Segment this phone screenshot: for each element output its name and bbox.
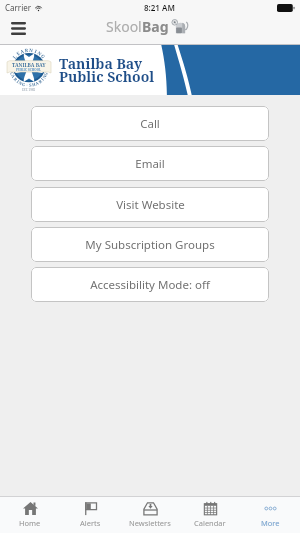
staticText: Newsletters	[129, 518, 171, 528]
button[interactable]: Alerts	[60, 496, 120, 533]
button[interactable]: Calendar	[180, 496, 240, 533]
staticText: Visit Website	[116, 197, 185, 213]
staticText: Carrier	[5, 2, 32, 13]
staticText: My Subscription Groups	[85, 237, 215, 253]
staticText: Skool	[106, 17, 142, 36]
staticText: 8:21 AM	[144, 2, 175, 13]
button[interactable]: Call	[31, 106, 269, 141]
staticText: Home	[19, 518, 41, 528]
staticText: Public School	[59, 67, 155, 86]
staticText: Email	[135, 156, 165, 172]
button[interactable]: My Subscription Groups	[31, 227, 269, 262]
staticText: More	[261, 518, 280, 528]
button[interactable]: Home	[0, 496, 60, 533]
staticText: Alerts	[80, 518, 101, 528]
button[interactable]: Accessibility Mode: off	[31, 267, 269, 302]
button[interactable]: More	[240, 496, 300, 533]
staticText: Calendar	[194, 518, 226, 528]
staticText: Call	[140, 116, 160, 132]
staticText: Accessibility Mode: off	[90, 277, 210, 293]
button[interactable]: Visit Website	[31, 187, 269, 222]
button[interactable]: Menu	[7, 17, 30, 40]
button[interactable]: Email	[31, 146, 269, 181]
staticText: Bag	[142, 17, 169, 36]
button[interactable]: Newsletters	[120, 496, 180, 533]
staticText: Tanilba Bay	[59, 54, 143, 73]
